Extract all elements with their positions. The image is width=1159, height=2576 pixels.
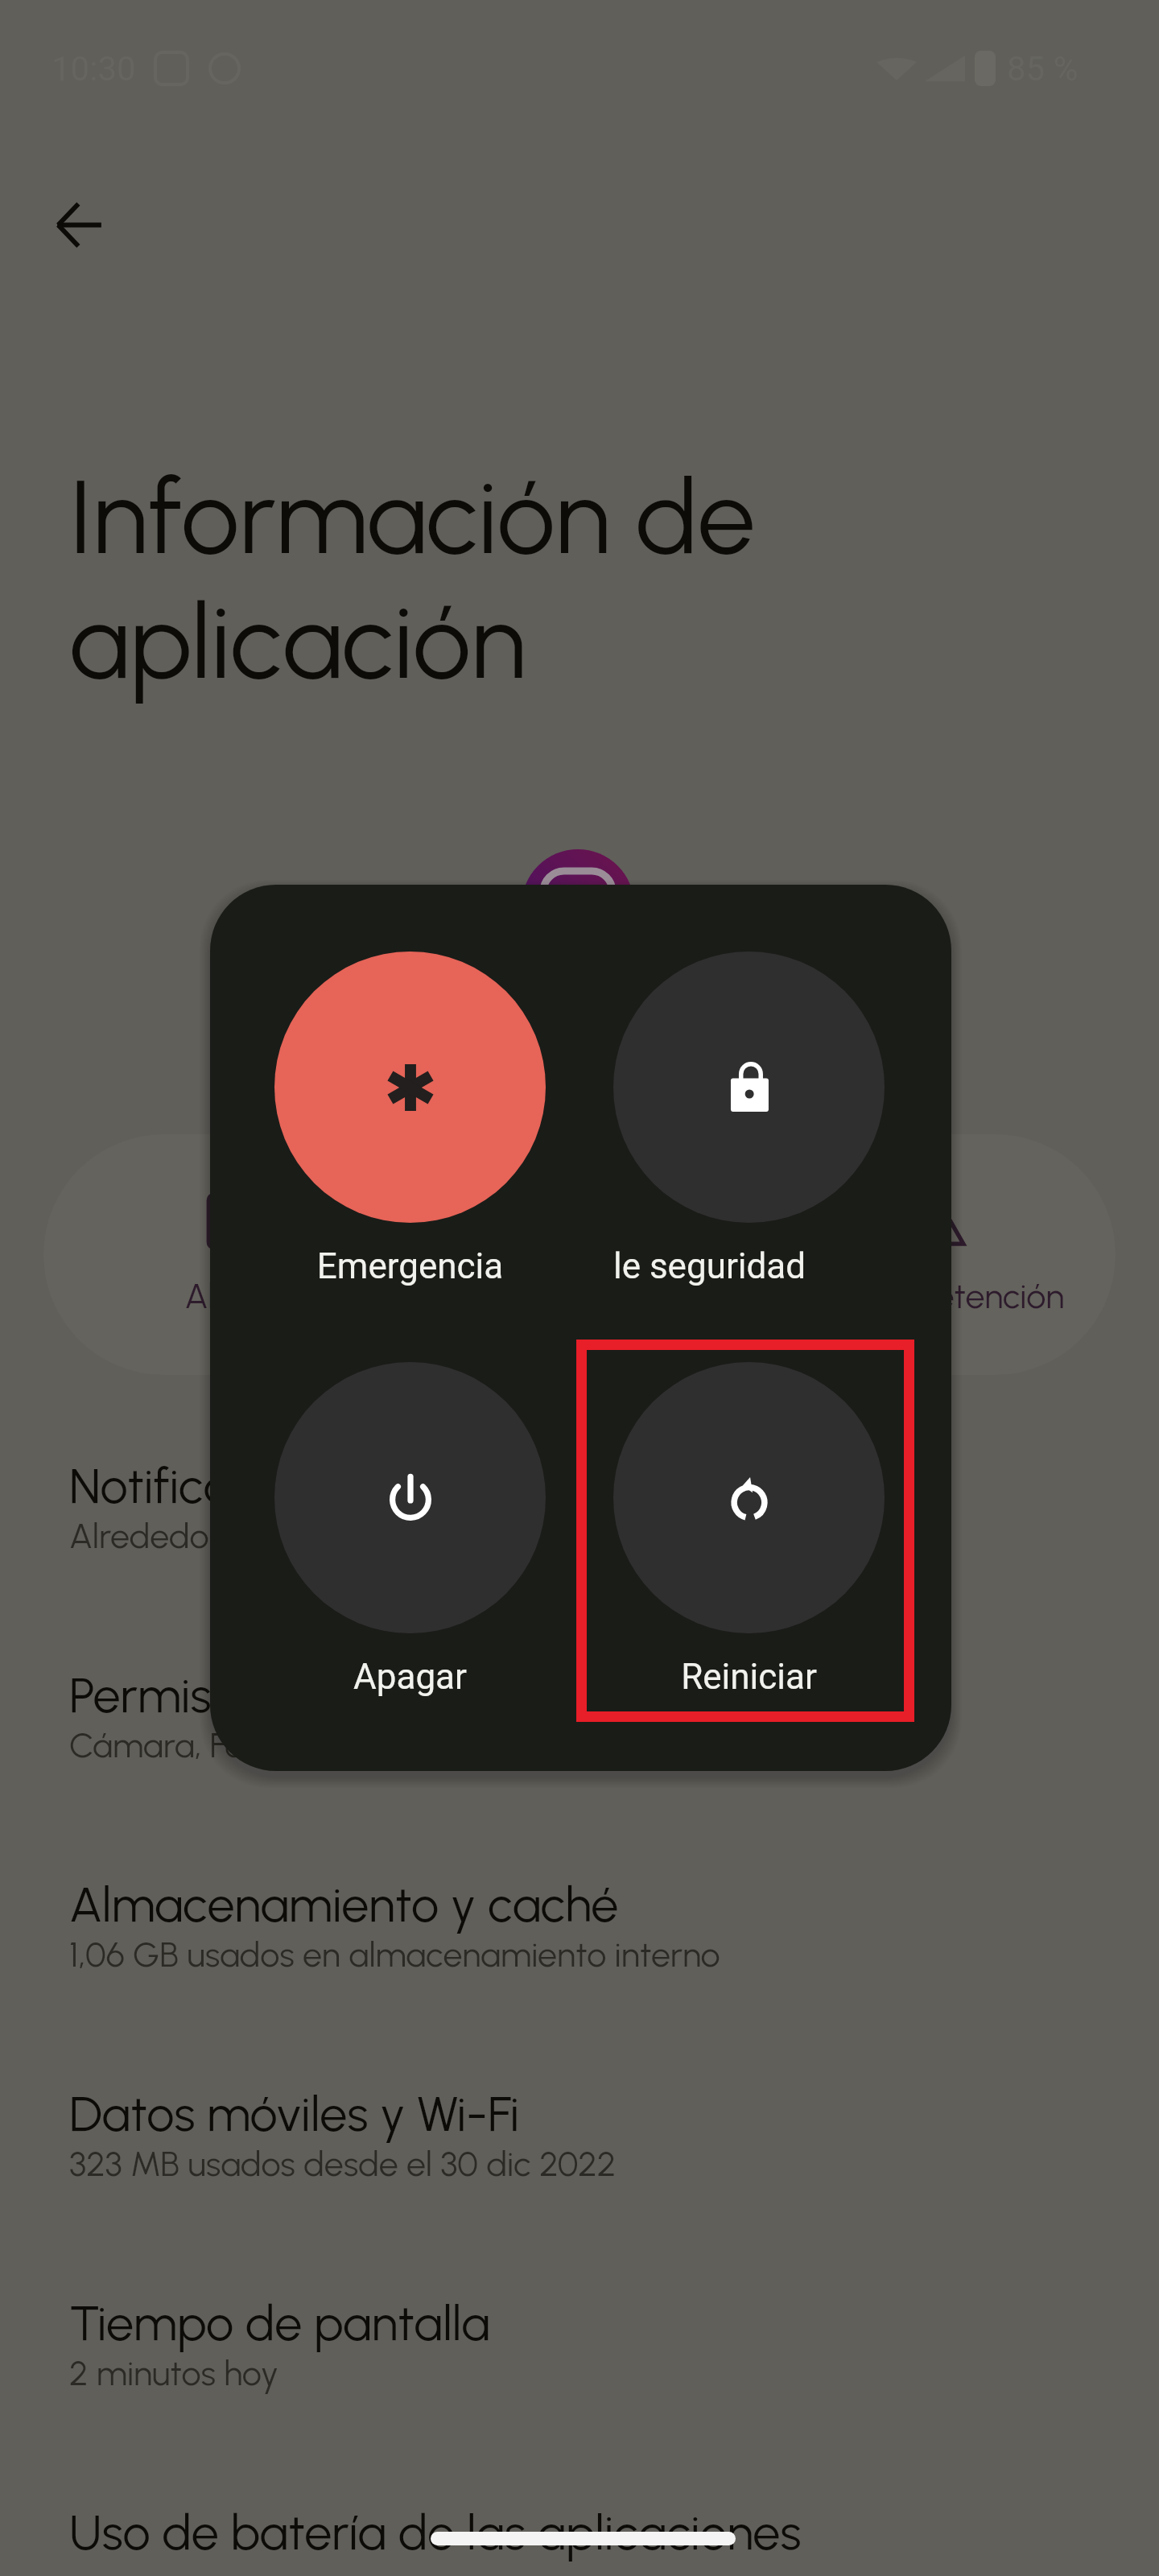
staticText: Emergencia	[274, 1245, 546, 1287]
button[interactable]: Reiniciar	[613, 1362, 885, 1698]
button[interactable]: Desinstalar	[401, 1134, 758, 1375]
button[interactable]: Datos móviles y Wi-Fi	[0, 2084, 1159, 2185]
button[interactable]: Uso de batería de las aplicaciones	[0, 2503, 1159, 2562]
staticText: Notificaciones	[69, 1456, 367, 1515]
staticText: Reiniciar	[613, 1656, 885, 1698]
staticText: Alrededor de 3 notificaciones por semana	[69, 1515, 700, 1557]
staticText: Almacenamiento y caché	[69, 1875, 619, 1934]
button[interactable]: Almacenamiento y caché	[0, 1875, 1159, 1975]
button[interactable]: le seguridad	[613, 952, 885, 1287]
staticText: Forzar detención	[758, 1275, 1116, 1317]
staticText: aplicación	[69, 579, 526, 704]
staticText: 1,06 GB usados en almacenamiento interno	[69, 1934, 720, 1975]
button[interactable]: Tiempo de pantalla	[0, 2293, 1159, 2394]
staticText: 323 MB usados desde el 30 dic 2022	[69, 2143, 617, 2185]
staticText: Tiempo de pantalla	[69, 2293, 490, 2352]
staticText: Desinstalar	[401, 1275, 758, 1317]
button[interactable]: Back	[27, 172, 131, 277]
staticText: Cámara, Fotos y vídeos, y Micrófono	[69, 1724, 616, 1766]
button[interactable]: Abrir	[43, 1134, 401, 1375]
staticText: Información de	[69, 454, 756, 579]
button[interactable]: Permisos	[0, 1666, 1159, 1766]
staticText: Uso de batería de las aplicaciones	[69, 2503, 802, 2562]
button[interactable]: Apagar	[274, 1362, 546, 1698]
button[interactable]: Emergencia	[274, 952, 546, 1287]
staticText: le seguridad	[574, 1245, 845, 1287]
staticText: Apagar	[274, 1656, 546, 1698]
staticText: Abrir	[43, 1275, 401, 1317]
staticText: 2 minutos hoy	[69, 2352, 278, 2394]
button[interactable]: Notificaciones	[0, 1456, 1159, 1557]
staticText: Permisos	[69, 1666, 260, 1724]
staticText: Datos móviles y Wi-Fi	[69, 2084, 520, 2143]
button[interactable]: Forzar detención	[758, 1134, 1116, 1375]
